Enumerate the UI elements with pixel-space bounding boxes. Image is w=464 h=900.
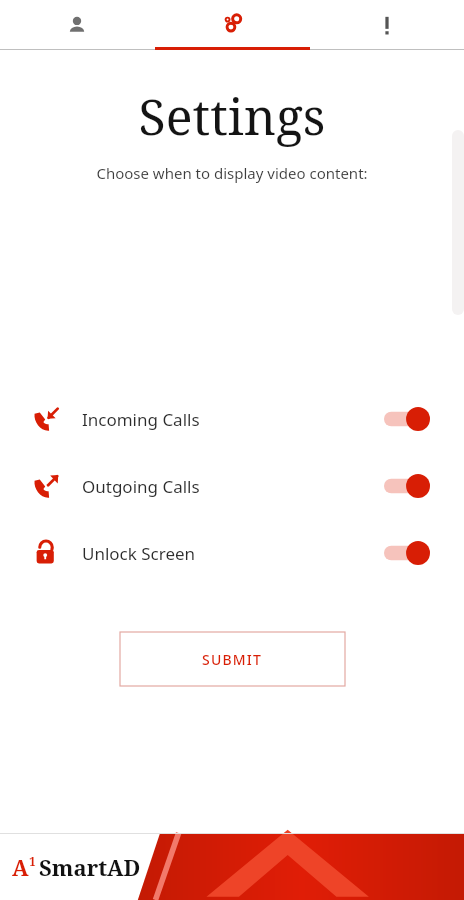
staticText: Incoming Calls [82, 408, 200, 431]
staticText: SmartAD [39, 852, 141, 882]
staticText: Choose when to display video content: [0, 163, 464, 183]
button[interactable]: Profile [0, 0, 154, 50]
button[interactable]: Outgoing Calls [0, 467, 464, 505]
button[interactable]: Unlock Screen [0, 534, 464, 572]
staticText: Outgoing Calls [82, 475, 200, 498]
staticText: Settings [0, 82, 464, 150]
button[interactable]: A [0, 833, 464, 900]
button[interactable]: Incoming Calls toggle [384, 406, 430, 432]
button[interactable]: Alerts [309, 0, 464, 50]
button[interactable]: Bubbles [154, 0, 309, 50]
staticText: SUBMIT [202, 650, 263, 669]
button[interactable]: Incoming Calls [0, 400, 464, 438]
button[interactable]: Outgoing Calls toggle [384, 473, 430, 499]
button[interactable]: SUBMIT [120, 632, 345, 686]
staticText: 1 [29, 853, 36, 869]
staticText: A [12, 852, 29, 882]
button[interactable]: Unlock Screen toggle [384, 540, 430, 566]
staticText: Unlock Screen [82, 542, 196, 565]
